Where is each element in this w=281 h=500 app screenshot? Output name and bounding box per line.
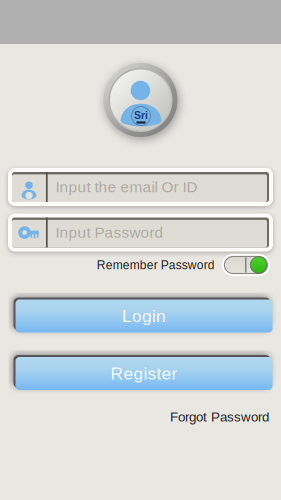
staticText: Register [110, 364, 177, 383]
button[interactable]: Forgot Password [170, 410, 269, 424]
button[interactable]: Input Password [8, 213, 273, 251]
staticText: Sri [134, 109, 148, 121]
button[interactable]: Login [15, 299, 272, 332]
staticText: Input Password [56, 224, 164, 241]
staticText: Forgot Password [170, 410, 269, 424]
button[interactable]: Input the email Or ID [8, 168, 273, 206]
button[interactable]: Remember Password switch, on [222, 254, 270, 276]
button[interactable]: Register [15, 357, 272, 390]
staticText: Login [122, 306, 166, 326]
staticText: Input the email Or ID [56, 178, 198, 195]
staticText: Remember Password [97, 258, 215, 272]
